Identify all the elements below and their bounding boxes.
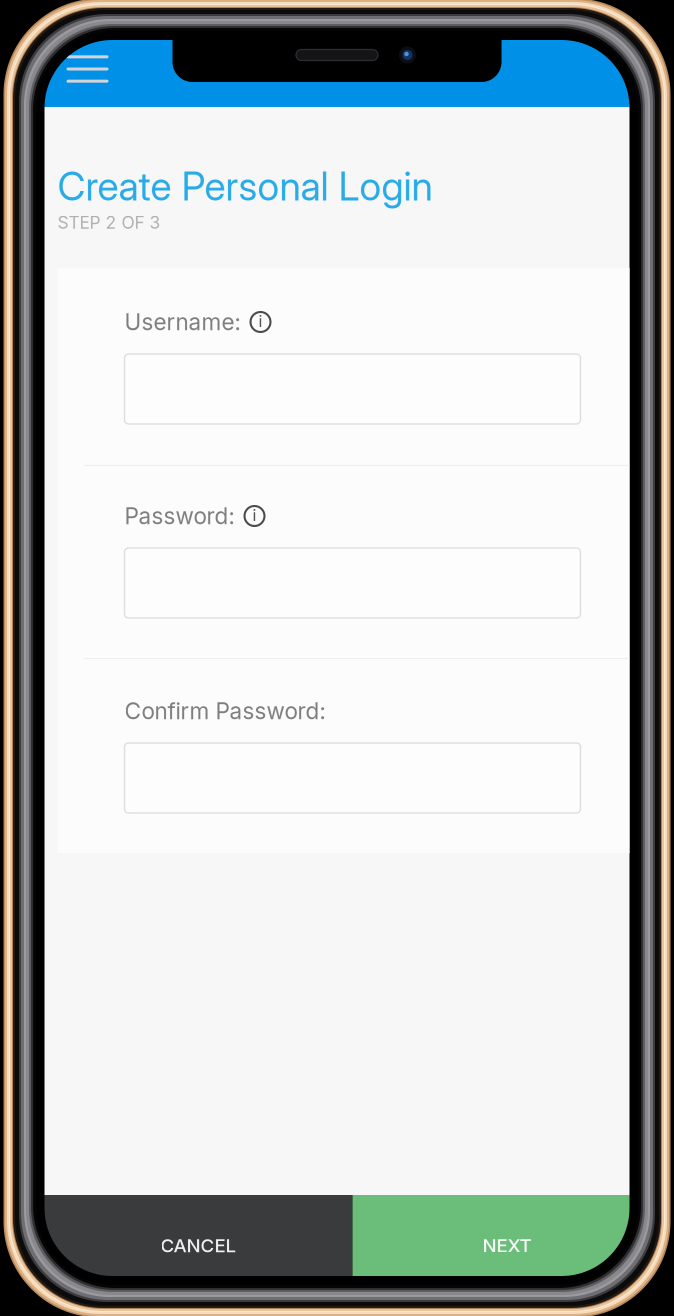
staticText: STEP 2 OF 3 — [57, 212, 160, 233]
staticText: Password: — [124, 502, 234, 530]
staticText: Confirm Password: — [124, 697, 325, 725]
button[interactable]: NEXT — [352, 1195, 629, 1276]
button[interactable]: Menu — [44, 40, 130, 98]
button[interactable]: CANCEL — [44, 1195, 352, 1276]
staticText: NEXT — [482, 1234, 531, 1257]
staticText: CANCEL — [160, 1234, 236, 1257]
staticText: i — [258, 312, 262, 331]
staticText: Create Personal Login — [57, 163, 432, 210]
staticText: Username: — [124, 308, 240, 336]
staticText: i — [252, 506, 256, 525]
